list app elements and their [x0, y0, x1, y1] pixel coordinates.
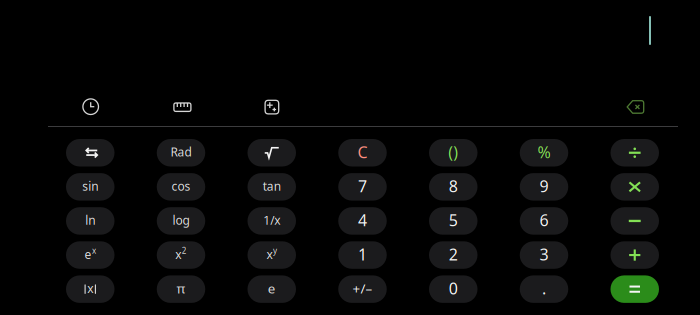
staticText: x	[92, 245, 96, 256]
button[interactable]: 0	[429, 275, 477, 303]
button[interactable]: 6	[520, 207, 568, 235]
staticText: cos	[171, 178, 190, 194]
staticText: π	[176, 279, 185, 297]
button[interactable]: 4	[338, 207, 387, 235]
staticText: y	[273, 245, 277, 256]
button[interactable]	[66, 139, 114, 166]
staticText: 3	[539, 244, 548, 265]
staticText: C	[357, 141, 367, 162]
staticText: tan	[263, 178, 281, 194]
staticText: 5	[449, 209, 458, 231]
button[interactable]: 7	[338, 173, 387, 201]
staticText: 2	[449, 244, 458, 265]
staticText: x	[266, 246, 272, 262]
staticText: ln	[85, 212, 95, 228]
staticText: 8	[449, 175, 458, 197]
button[interactable]: History	[76, 92, 105, 121]
button[interactable]	[610, 173, 659, 201]
button[interactable]: 1	[338, 241, 387, 269]
button[interactable]: 3	[520, 241, 568, 269]
button[interactable]	[610, 207, 659, 235]
staticText: Rad	[170, 144, 191, 160]
staticText: 9	[539, 175, 548, 197]
staticText: 6	[539, 209, 548, 231]
button[interactable]: Rad	[157, 139, 205, 166]
button[interactable]: x	[66, 275, 114, 303]
staticText: +/–	[352, 279, 372, 297]
button[interactable]: log	[157, 207, 205, 235]
button[interactable]: sin	[66, 173, 114, 201]
staticText: 2	[182, 245, 187, 256]
button[interactable]: .	[520, 275, 568, 303]
button[interactable]: 8	[429, 173, 477, 201]
staticText: log	[172, 212, 189, 228]
staticText: e	[268, 279, 276, 297]
button[interactable]: π	[157, 275, 205, 303]
button[interactable]: 2	[429, 241, 477, 269]
button[interactable]: Delete	[620, 94, 651, 120]
button[interactable]	[610, 241, 659, 269]
button[interactable]: 9	[520, 173, 568, 201]
button[interactable]: Convert	[167, 93, 198, 122]
button[interactable]: %	[520, 139, 568, 166]
staticText: 7	[358, 175, 367, 197]
button[interactable]: e	[247, 275, 296, 303]
button[interactable]: x	[247, 241, 296, 269]
button[interactable]: C	[338, 139, 387, 166]
staticText: ()	[448, 141, 458, 162]
staticText: %	[537, 141, 550, 162]
staticText: 1/x	[263, 212, 280, 228]
button[interactable]: e	[66, 241, 114, 269]
staticText: .	[542, 278, 546, 299]
staticText: e	[84, 246, 91, 262]
staticText: 0	[449, 278, 458, 299]
button[interactable]: ln	[66, 207, 114, 235]
button[interactable]: +/–	[338, 275, 387, 303]
button[interactable]: Math Notes	[258, 94, 285, 121]
button[interactable]: 1/x	[247, 207, 296, 235]
staticText: x	[87, 280, 93, 296]
button[interactable]: tan	[247, 173, 296, 201]
staticText: 1	[358, 244, 367, 265]
button[interactable]	[610, 139, 659, 166]
staticText: sin	[82, 178, 98, 194]
button[interactable]: 5	[429, 207, 477, 235]
staticText: 4	[358, 209, 367, 231]
button[interactable]: x	[157, 241, 205, 269]
button[interactable]: ()	[429, 139, 477, 166]
staticText: x	[175, 246, 181, 262]
button[interactable]	[610, 275, 659, 303]
button[interactable]: cos	[157, 173, 205, 201]
button[interactable]	[247, 139, 296, 166]
